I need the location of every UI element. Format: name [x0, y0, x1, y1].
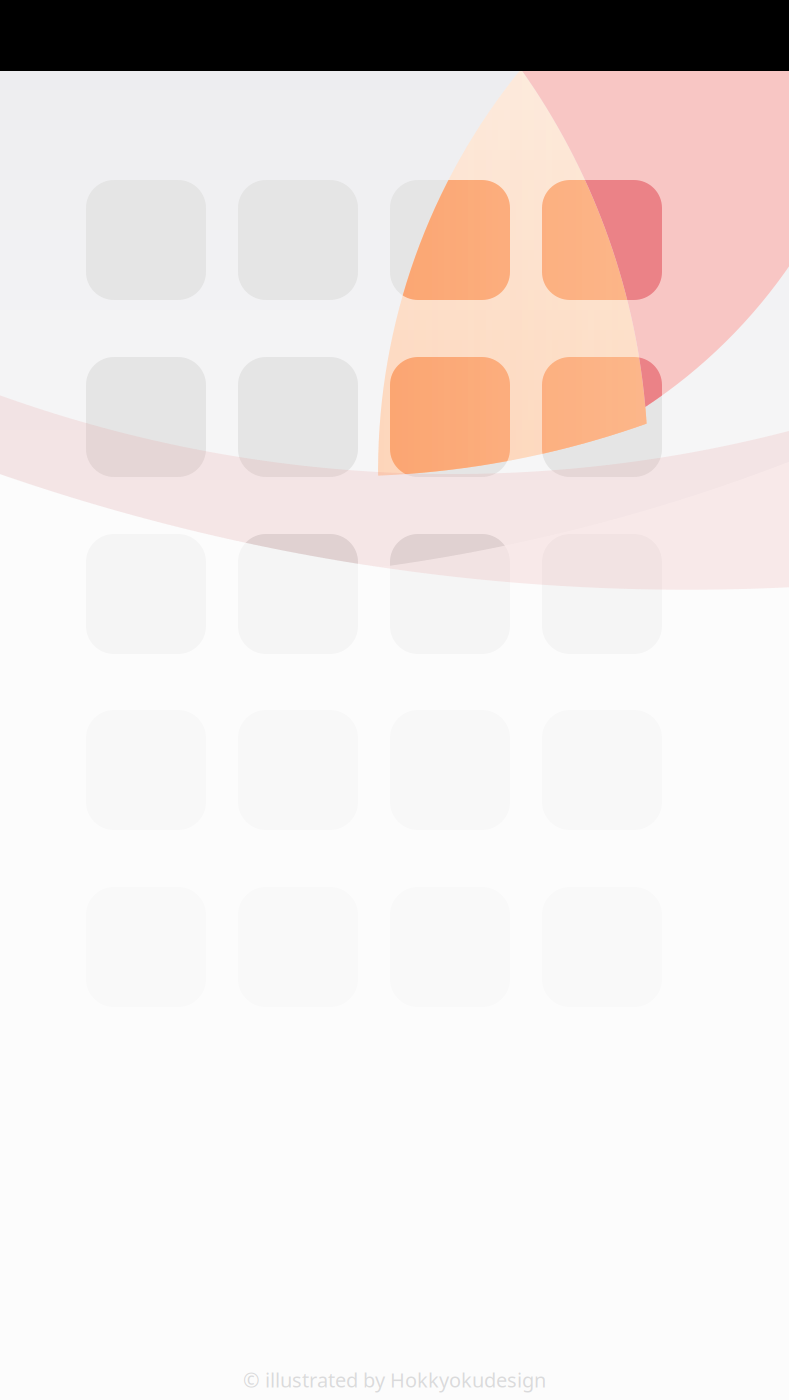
staticText: © illustrated by Hokkyokudesign: [243, 1366, 546, 1393]
